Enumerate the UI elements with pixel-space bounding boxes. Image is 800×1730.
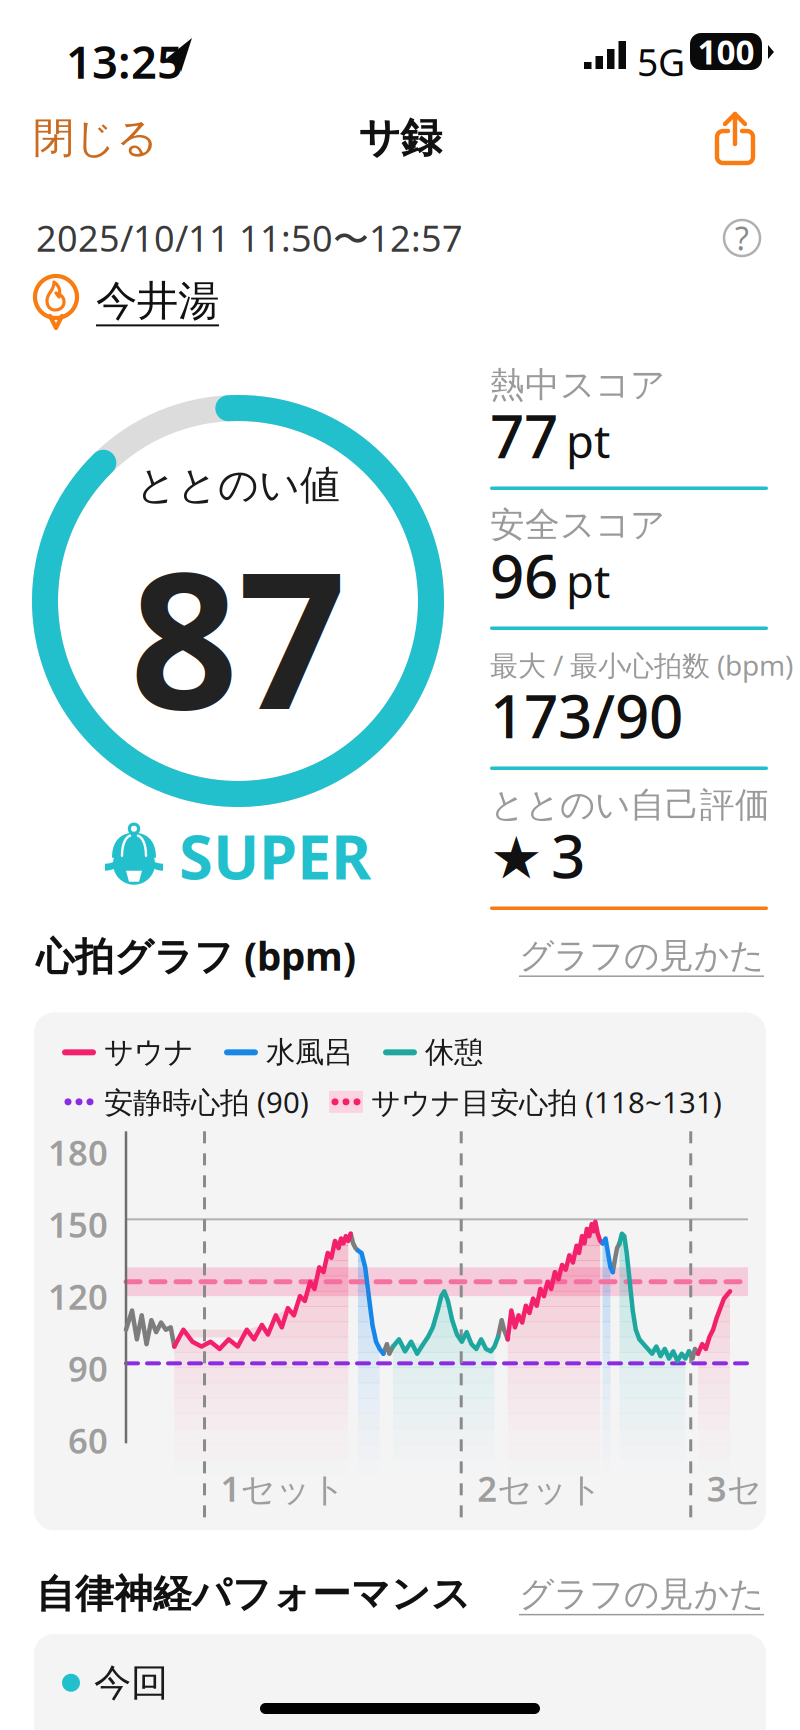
staticText: 120: [48, 1273, 108, 1319]
staticText: pt: [566, 551, 610, 611]
staticText: 3: [551, 815, 585, 895]
staticText: ととのい自己評価: [490, 784, 770, 826]
staticText: サウナ: [104, 1034, 194, 1070]
staticText: 100: [697, 29, 754, 74]
staticText: 心拍グラフ (bpm): [36, 930, 356, 981]
staticText: 60: [68, 1417, 108, 1463]
staticText: サウナ目安心拍 (118~131): [371, 1082, 722, 1121]
staticText: 熱中スコア: [490, 364, 665, 406]
button[interactable]: Share: [685, 101, 800, 175]
staticText: 水風呂: [266, 1034, 353, 1070]
staticText: SUPER: [179, 815, 371, 896]
staticText: サ録: [358, 113, 441, 163]
staticText: pt: [566, 411, 610, 471]
staticText: 87: [130, 510, 346, 761]
staticText: 90: [68, 1345, 108, 1391]
button[interactable]: Help: [720, 216, 764, 260]
staticText: ?: [735, 217, 749, 259]
staticText: 77: [490, 395, 558, 475]
staticText: 今回: [94, 1660, 168, 1706]
staticText: 2セット: [477, 1465, 602, 1511]
staticText: 今井湯: [96, 276, 219, 326]
staticText: グラフの見かた: [519, 934, 764, 977]
staticText: グラフの見かた: [519, 1573, 764, 1615]
staticText: 安全スコア: [490, 504, 665, 546]
staticText: 閉じる: [33, 113, 158, 163]
staticText: 180: [48, 1129, 108, 1175]
staticText: 安静時心拍 (90): [104, 1082, 309, 1121]
staticText: 96: [490, 535, 558, 615]
staticText: 1セット: [220, 1465, 345, 1511]
staticText: ととのい値: [136, 461, 340, 510]
staticText: 自律神経パフォーマンス: [36, 1570, 471, 1618]
staticText: 2025/10/11 11:50〜12:57: [36, 214, 463, 262]
button[interactable]: 閉じる: [0, 101, 191, 175]
staticText: 150: [48, 1201, 108, 1247]
staticText: 13:25: [66, 31, 183, 91]
button[interactable]: グラフの見かた: [519, 1573, 764, 1615]
staticText: 173/90: [490, 675, 683, 755]
button[interactable]: グラフの見かた: [519, 934, 764, 977]
staticText: 休憩: [425, 1034, 483, 1070]
staticText: 5G: [637, 37, 685, 87]
staticText: 3セ: [707, 1465, 762, 1511]
staticText: 最大 / 最小心拍数 (bpm): [490, 646, 793, 684]
button[interactable]: 今井湯: [96, 276, 219, 326]
staticText: ★: [490, 825, 543, 891]
